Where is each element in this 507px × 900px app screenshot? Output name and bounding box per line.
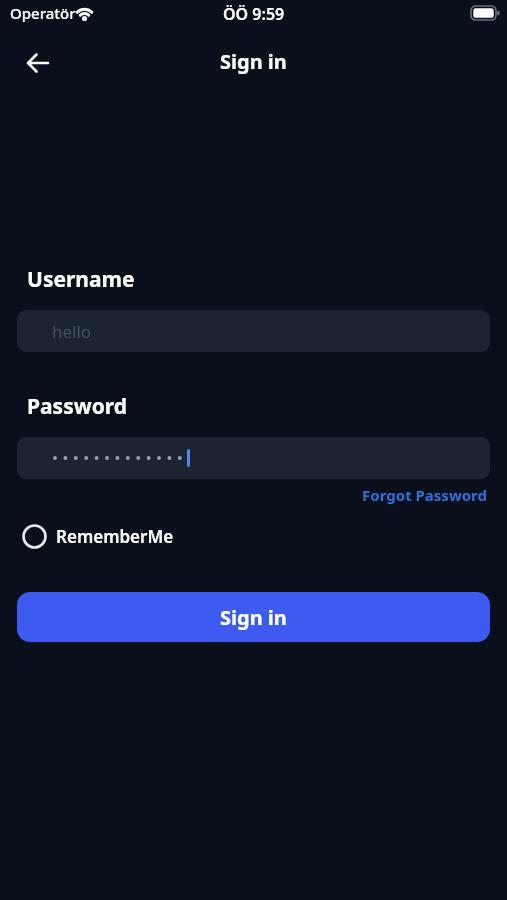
button[interactable]: hello: [17, 310, 490, 352]
staticText: Sign in: [220, 604, 287, 631]
staticText: ÖÖ 9:59: [223, 3, 285, 25]
button[interactable]: [16, 41, 60, 85]
staticText: Username: [27, 265, 135, 294]
staticText: Sign in: [220, 48, 287, 75]
staticText: hello: [52, 320, 92, 343]
button[interactable]: [17, 437, 490, 479]
staticText: Forgot Password: [340, 485, 487, 505]
button[interactable]: RememberMe: [20, 522, 176, 551]
button[interactable]: Forgot Password: [340, 485, 487, 505]
staticText: Operatör: [10, 3, 76, 23]
staticText: RememberMe: [56, 525, 174, 548]
staticText: Password: [27, 392, 128, 421]
button[interactable]: Sign in: [17, 592, 490, 642]
